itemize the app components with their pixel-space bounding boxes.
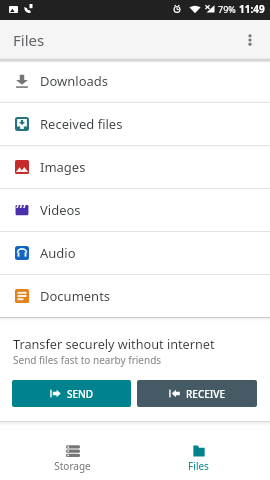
staticText: Videos [40, 201, 81, 219]
staticText: 79% [218, 3, 236, 15]
button[interactable]: Received files [0, 103, 270, 145]
staticText: RECEIVE [186, 387, 226, 401]
staticText: Files [13, 30, 45, 50]
staticText: Downloads [40, 72, 109, 90]
button[interactable]: Documents [0, 275, 270, 317]
button[interactable]: Images [0, 146, 270, 188]
button[interactable]: Storage [0, 445, 135, 480]
staticText: Received files [40, 115, 123, 133]
staticText: 11:49 [239, 2, 265, 16]
staticText: Transfer securely without internet [13, 335, 215, 352]
staticText: Files [188, 459, 209, 473]
staticText: SEND [67, 387, 94, 401]
button[interactable]: Files [135, 445, 270, 480]
button[interactable]: Downloads [0, 60, 270, 102]
staticText: Documents [40, 287, 111, 305]
button[interactable]: SEND [12, 380, 131, 407]
button[interactable]: More options [236, 26, 264, 54]
button[interactable]: RECEIVE [137, 380, 257, 407]
button[interactable]: Audio [0, 232, 270, 274]
staticText: Send files fast to nearby friends [13, 353, 162, 367]
staticText: Storage [54, 459, 91, 473]
staticText: Audio [40, 244, 76, 262]
staticText: Images [40, 158, 86, 176]
button[interactable]: Videos [0, 189, 270, 231]
